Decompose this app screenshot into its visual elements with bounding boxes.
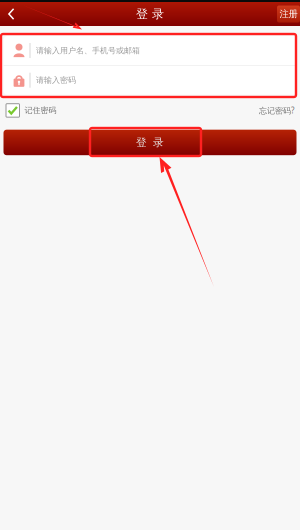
button[interactable]: 记住密码 (6, 101, 56, 120)
staticText: 注册 (279, 8, 297, 20)
button[interactable]: 注册 (277, 5, 300, 22)
staticText: 请输入密码 (36, 75, 76, 85)
staticText: 登 录 (136, 7, 164, 21)
staticText: 登 录 (136, 136, 164, 149)
button[interactable]: 登 录 (3, 130, 296, 155)
button[interactable]: 返回 (0, 2, 25, 26)
staticText: 记住密码 (24, 105, 56, 115)
staticText: 请输入用户名、手机号或邮箱 (36, 46, 140, 55)
button[interactable]: 忘记密码? (259, 102, 294, 119)
staticText: 忘记密码? (259, 105, 294, 116)
